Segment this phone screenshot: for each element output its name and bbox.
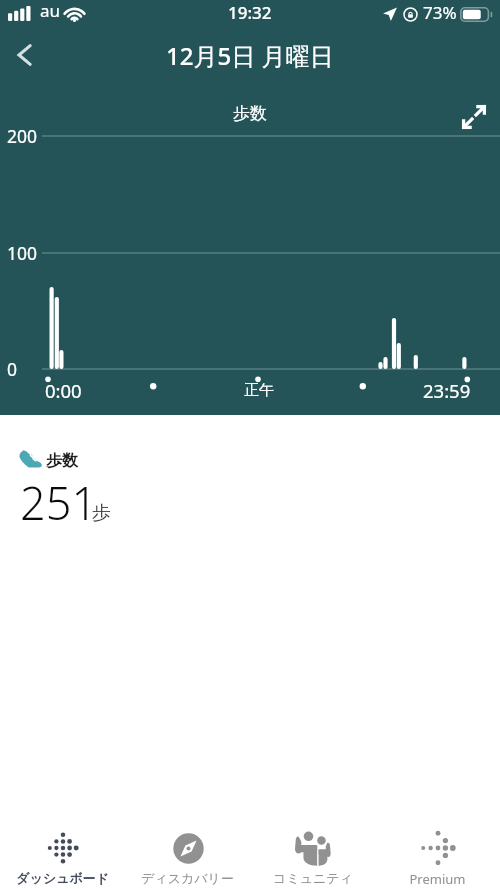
staticText: ディスカバリー <box>141 870 234 886</box>
button[interactable]: ディスカバリー <box>125 805 250 889</box>
staticText: 歩 <box>92 501 111 525</box>
staticText: Premium <box>409 870 466 888</box>
staticText: 0 <box>7 357 18 381</box>
staticText: 23:59 <box>423 378 471 403</box>
staticText: 歩数 <box>233 103 267 124</box>
staticText: 200 <box>7 124 38 148</box>
staticText: 19:32 <box>228 1 272 24</box>
staticText: 251 <box>20 472 98 533</box>
staticText: 正午 <box>244 381 274 400</box>
staticText: 歩数 <box>46 451 78 471</box>
button[interactable]: ダッシュボード <box>0 805 125 889</box>
staticText: 0:00 <box>45 378 82 403</box>
staticText: コミュニティ <box>273 870 353 886</box>
staticText: au <box>40 0 61 22</box>
button[interactable]: Premium <box>375 805 500 889</box>
staticText: ダッシュボード <box>16 870 109 886</box>
button[interactable]: コミュニティ <box>250 805 375 889</box>
staticText: 100 <box>7 241 38 265</box>
button[interactable]: 歩数 <box>0 415 500 540</box>
staticText: 73% <box>423 1 457 24</box>
staticText: 12月5日 月曜日 <box>166 39 334 72</box>
button[interactable]: Back <box>2 32 48 78</box>
button[interactable]: Expand chart <box>452 95 496 139</box>
